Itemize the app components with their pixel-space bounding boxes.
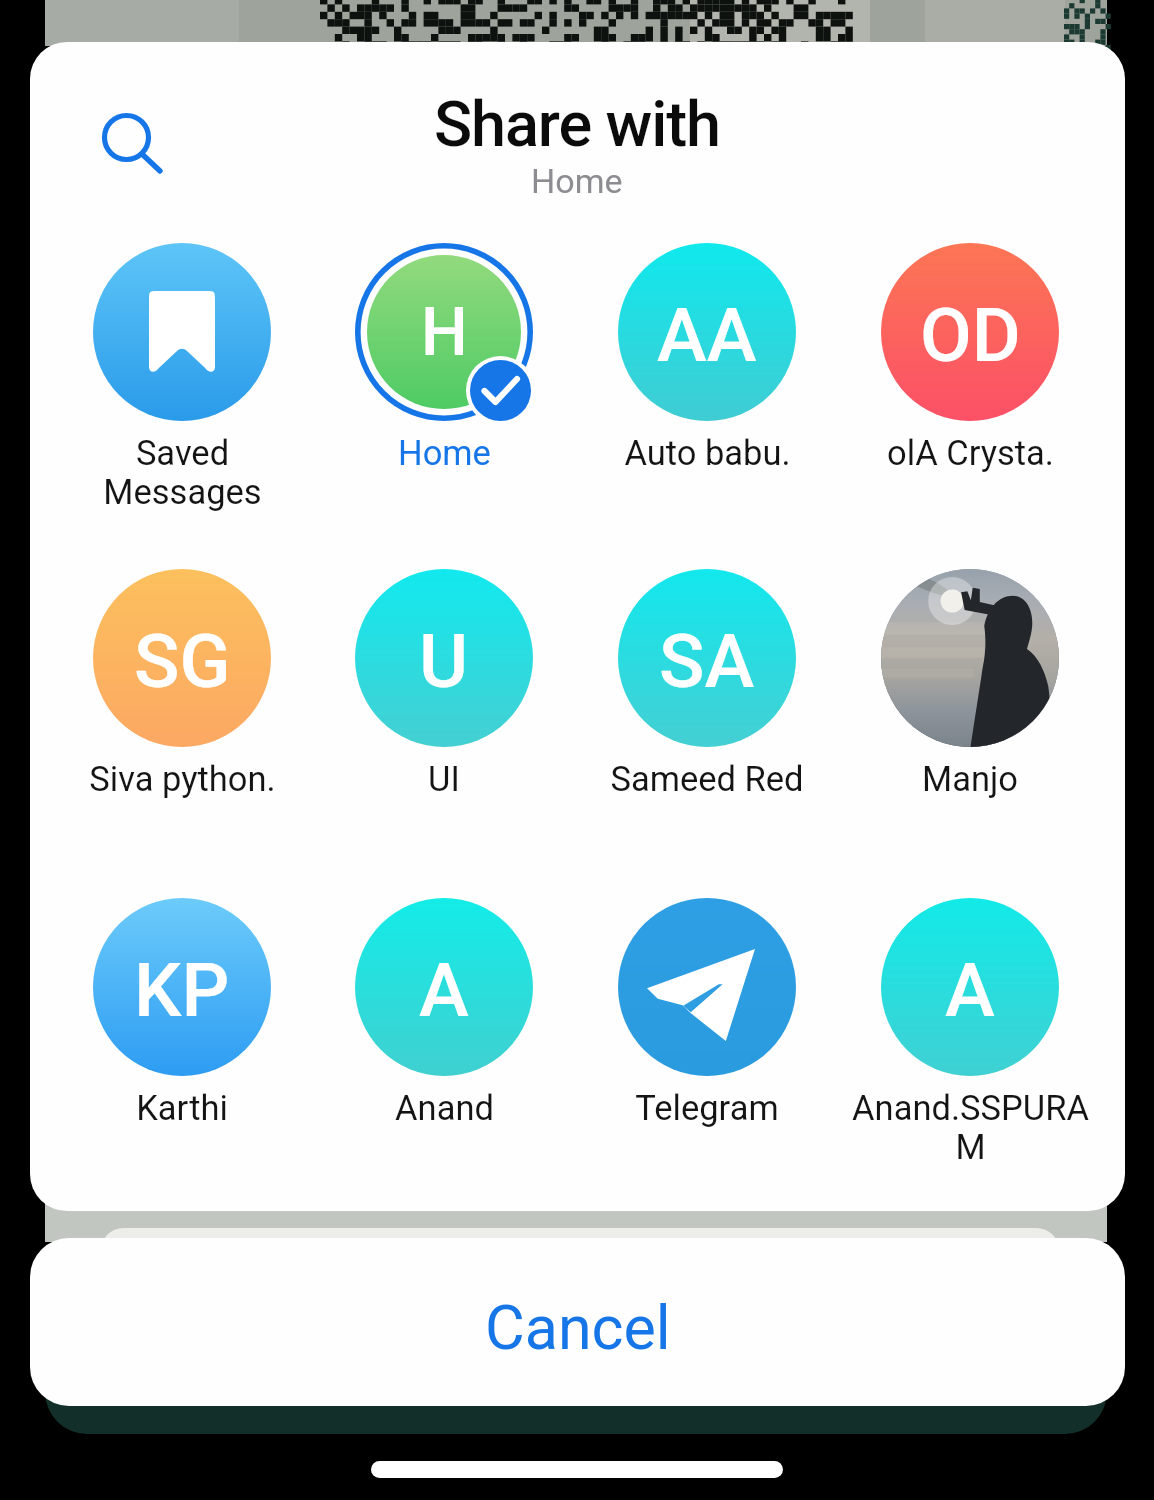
staticText: OD <box>920 291 1021 379</box>
staticText: SA <box>659 617 755 705</box>
staticText: SG <box>134 617 231 705</box>
staticText: olA Crysta. <box>887 433 1054 473</box>
button[interactable]: SA <box>576 563 838 813</box>
button[interactable]: KP <box>51 892 313 1142</box>
staticText: U <box>419 617 469 705</box>
button[interactable]: Telegram <box>576 892 838 1142</box>
staticText: UI <box>428 759 460 799</box>
button[interactable]: OD <box>839 237 1101 487</box>
staticText: Auto babu. <box>624 433 791 473</box>
button[interactable]: Search <box>92 103 162 173</box>
staticText: Karthi <box>136 1088 228 1128</box>
button[interactable]: U <box>313 563 575 813</box>
staticText: Anand <box>395 1088 494 1128</box>
button[interactable]: H <box>313 237 575 487</box>
staticText: Anand.SSPURA M <box>852 1088 1089 1167</box>
button[interactable]: Saved Messages <box>51 237 313 487</box>
staticText: Share with <box>434 88 721 152</box>
staticText: Manjo <box>922 759 1018 799</box>
staticText: Cancel <box>485 1292 671 1363</box>
button[interactable]: Cancel <box>30 1238 1125 1406</box>
staticText: Siva python. <box>89 759 276 799</box>
staticText: Sameed Red <box>610 759 804 799</box>
button[interactable]: AA <box>576 237 838 487</box>
staticText: Saved Messages <box>103 433 262 512</box>
button[interactable]: Manjo <box>839 563 1101 813</box>
staticText: Home <box>398 433 491 473</box>
button[interactable]: A <box>839 892 1101 1142</box>
staticText: KP <box>134 946 230 1034</box>
staticText: A <box>419 946 469 1034</box>
staticText: H <box>421 294 468 371</box>
button[interactable]: SG <box>51 563 313 813</box>
staticText: A <box>945 946 995 1034</box>
staticText: Home <box>531 161 623 201</box>
staticText: AA <box>657 291 757 379</box>
staticText: Telegram <box>635 1088 779 1128</box>
button[interactable]: A <box>313 892 575 1142</box>
